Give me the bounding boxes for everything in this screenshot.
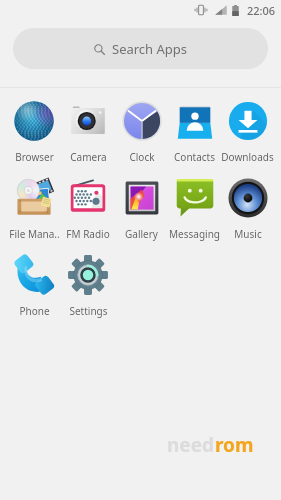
staticText: Browser	[15, 150, 54, 164]
staticText: Music	[234, 227, 262, 241]
staticText: Settings	[69, 304, 108, 318]
button[interactable]: File Mana..	[7, 172, 61, 249]
staticText: FM Radio	[66, 227, 110, 241]
staticText: Contacts	[174, 150, 215, 164]
staticText: Downloads	[221, 150, 274, 164]
button[interactable]: Contacts	[168, 95, 221, 172]
staticText: Messaging	[169, 227, 220, 241]
staticText: need	[167, 432, 215, 458]
staticText: Clock	[129, 150, 155, 164]
staticText: Search Apps	[112, 40, 188, 58]
button[interactable]: Phone	[7, 249, 61, 326]
staticText: File Mana..	[9, 227, 60, 241]
button[interactable]: Downloads	[221, 95, 274, 172]
staticText: rom	[215, 432, 254, 458]
button[interactable]: Browser	[7, 95, 61, 172]
button[interactable]: Search Apps	[13, 28, 268, 69]
staticText: Phone	[19, 304, 50, 318]
button[interactable]: Clock	[115, 95, 168, 172]
staticText: Gallery	[125, 227, 158, 241]
staticText: Camera	[70, 150, 107, 164]
button[interactable]: Camera	[61, 95, 115, 172]
button[interactable]: FM Radio	[61, 172, 115, 249]
staticText: 22:06	[247, 3, 276, 18]
button[interactable]: Music	[221, 172, 274, 249]
button[interactable]: Settings	[61, 249, 115, 326]
button[interactable]: Gallery	[115, 172, 168, 249]
button[interactable]: Messaging	[168, 172, 221, 249]
